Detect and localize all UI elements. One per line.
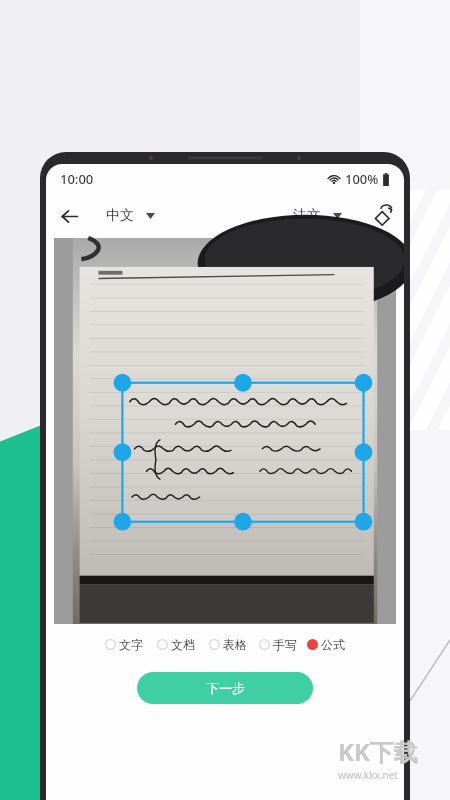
button[interactable]: Back: [46, 194, 92, 238]
staticText: 表格: [223, 637, 247, 652]
button[interactable]: Rotate: [362, 194, 404, 238]
button[interactable]: 下一步: [137, 672, 313, 704]
staticText: 10:00: [60, 170, 94, 188]
button[interactable]: 手写: [257, 633, 299, 656]
staticText: 中文: [106, 207, 134, 225]
staticText: 法文: [293, 207, 321, 225]
staticText: 100%: [345, 170, 379, 188]
staticText: 下一步: [206, 680, 245, 696]
button[interactable]: 公式: [305, 633, 347, 656]
button[interactable]: 文字: [103, 633, 145, 656]
staticText: 公式: [321, 637, 345, 652]
staticText: 文字: [119, 637, 143, 652]
button[interactable]: 文档: [155, 633, 197, 656]
button[interactable]: 表格: [207, 633, 249, 656]
staticText: 手写: [273, 637, 297, 652]
button[interactable]: 中文: [102, 203, 159, 229]
staticText: 文档: [171, 637, 195, 652]
staticText: www.kkx.net: [338, 768, 398, 782]
staticText: KK下载: [338, 735, 418, 768]
button[interactable]: 法文: [289, 203, 346, 229]
